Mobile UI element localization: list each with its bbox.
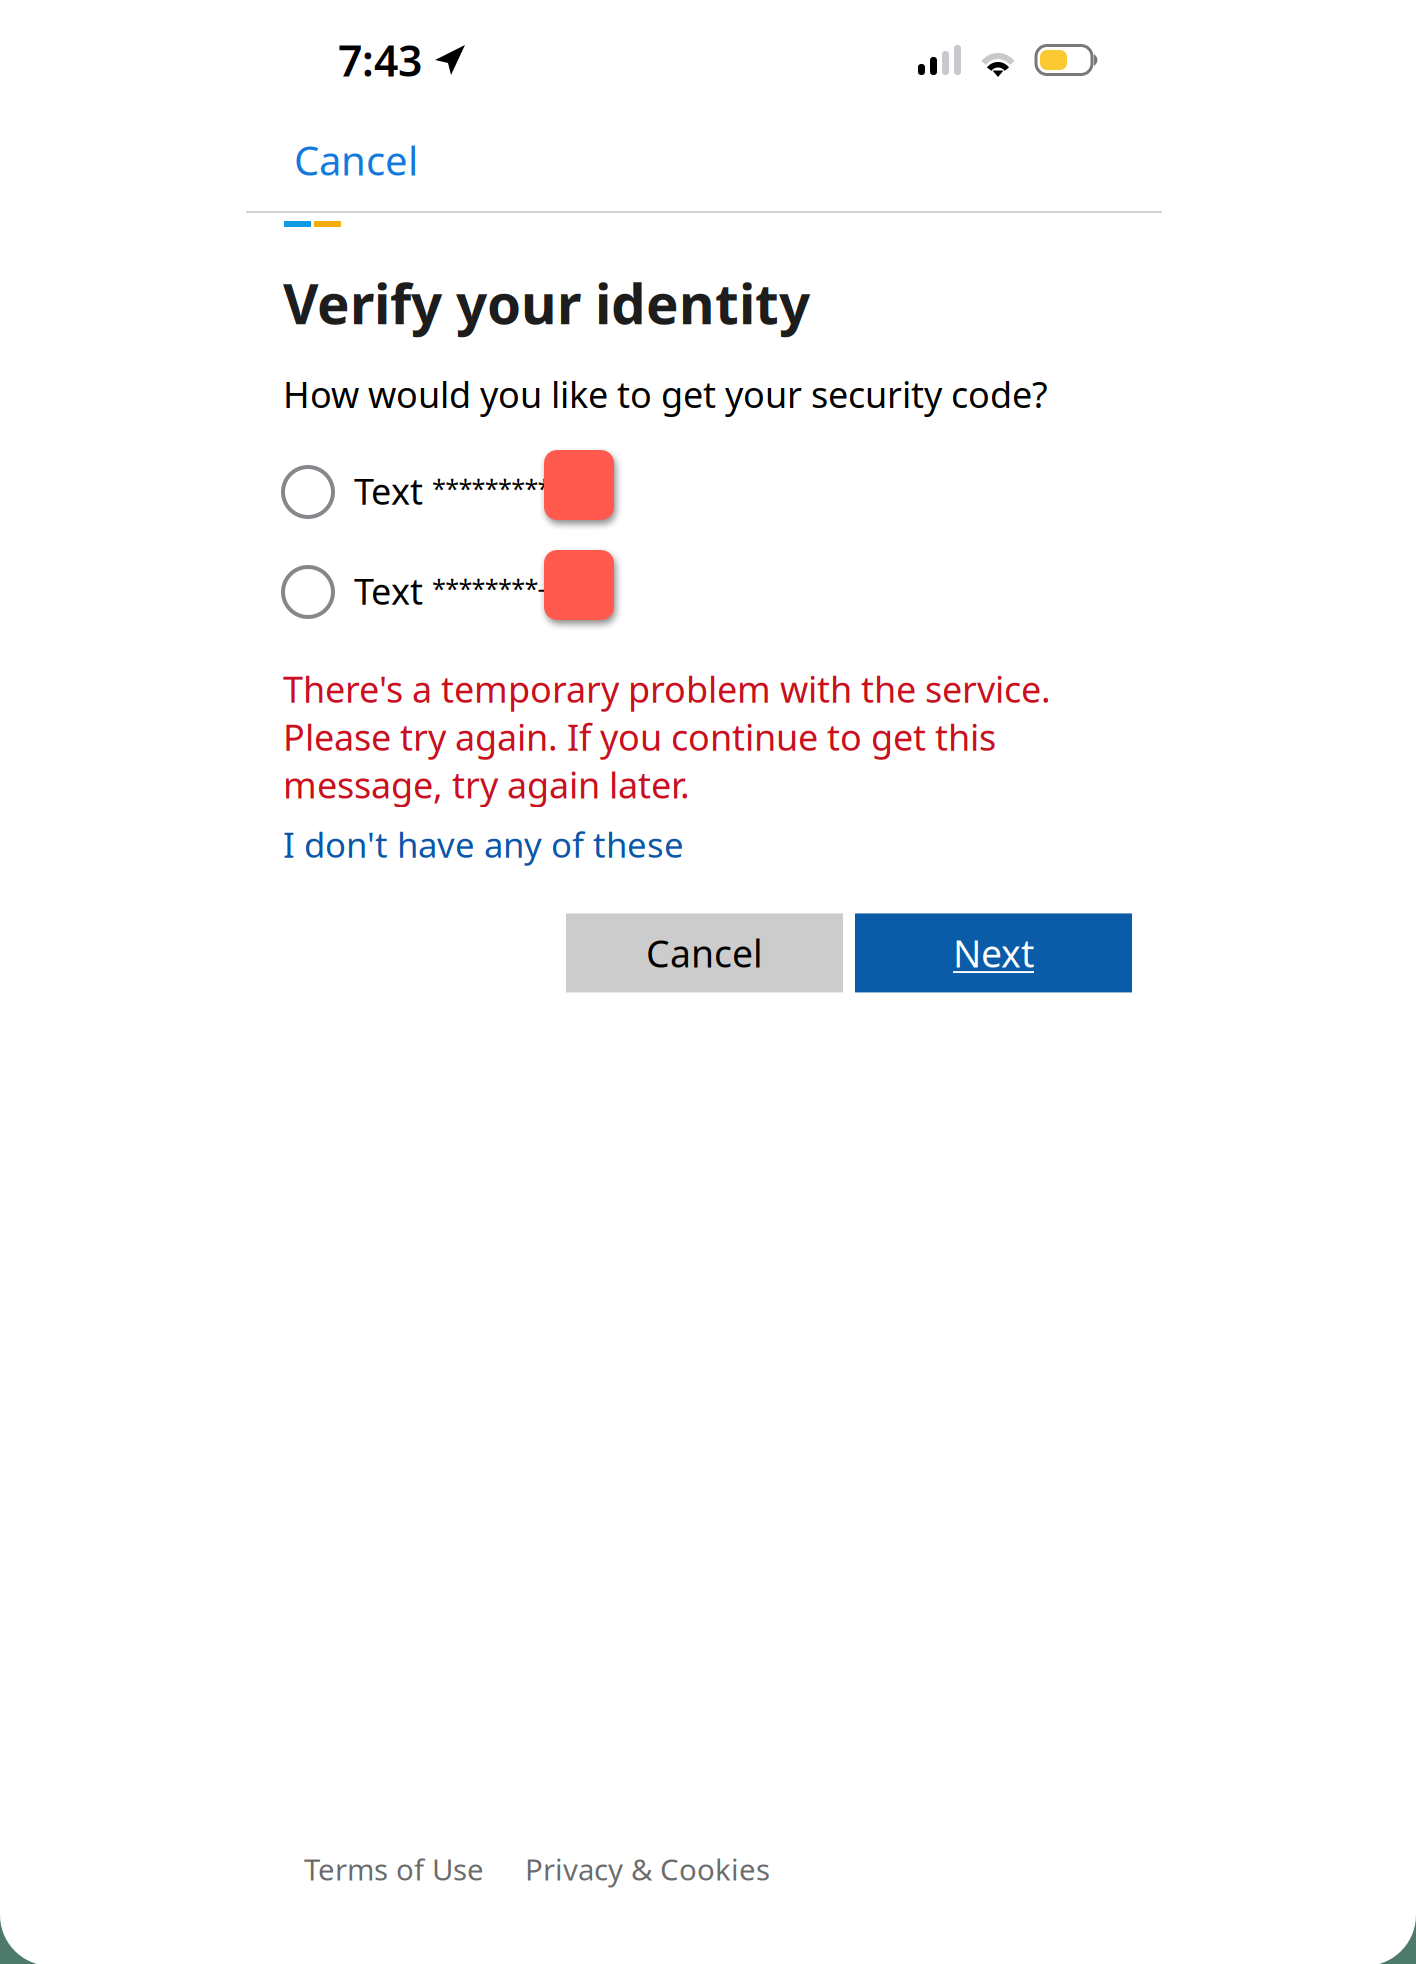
button[interactable]: I don't have any of these (283, 821, 684, 867)
staticText: Privacy & Cookies (525, 1849, 770, 1888)
button[interactable]: Text message to phone number ending ****… (283, 550, 713, 620)
button[interactable]: Text message to phone number ending ****… (283, 450, 713, 520)
button[interactable]: Cancel (0, 119, 458, 200)
staticText: 7:43 (338, 32, 422, 88)
staticText: ********* (432, 471, 552, 505)
staticText: Text (354, 567, 423, 615)
staticText: There's a temporary problem with the ser… (283, 665, 1051, 808)
staticText: Cancel (646, 928, 763, 978)
staticText: ********- (432, 571, 546, 605)
button[interactable]: Cancel (566, 913, 843, 992)
staticText: Terms of Use (304, 1849, 484, 1888)
button[interactable]: Next (855, 913, 1132, 992)
button[interactable]: Terms of Use (304, 1849, 484, 1888)
staticText: I don't have any of these (283, 821, 684, 867)
button[interactable]: Privacy & Cookies (525, 1849, 770, 1888)
staticText: Next (953, 928, 1034, 978)
staticText: Verify your identity (283, 267, 810, 339)
staticText: How would you like to get your security … (283, 370, 1048, 418)
staticText: Text (354, 467, 423, 515)
staticText: Cancel (294, 133, 418, 186)
